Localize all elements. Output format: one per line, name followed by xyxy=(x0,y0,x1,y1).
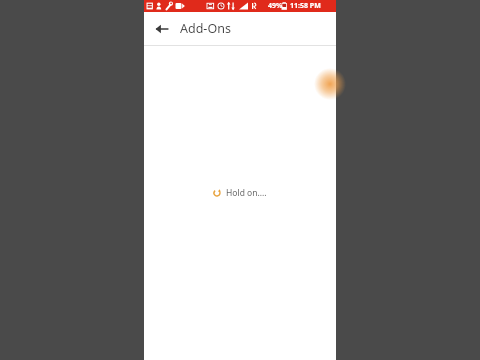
staticText: Hold on.... xyxy=(226,187,267,199)
button[interactable]: Back xyxy=(150,17,174,41)
staticText: Add-Ons xyxy=(180,20,231,37)
staticText: 49% xyxy=(268,1,283,11)
staticText: 11:58 PM xyxy=(290,1,321,11)
